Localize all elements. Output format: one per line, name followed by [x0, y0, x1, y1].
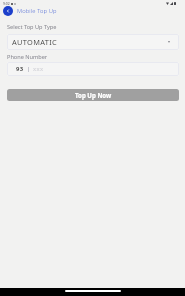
- button[interactable]: Back: [3, 6, 13, 16]
- staticText: 93: [16, 65, 24, 73]
- staticText: Select Top Up Type: [7, 23, 57, 31]
- staticText: AUTOMATIC: [12, 37, 58, 47]
- button[interactable]: AUTOMATIC: [7, 34, 179, 50]
- button[interactable]: 93: [7, 62, 179, 76]
- staticText: Mobile Top Up: [17, 7, 57, 15]
- button[interactable]: Top Up Now: [7, 89, 179, 101]
- staticText: 9:02: [3, 1, 10, 6]
- staticText: Top Up Now: [75, 91, 112, 99]
- staticText: Phone Number: [7, 53, 48, 61]
- staticText: xxx: [33, 65, 44, 73]
